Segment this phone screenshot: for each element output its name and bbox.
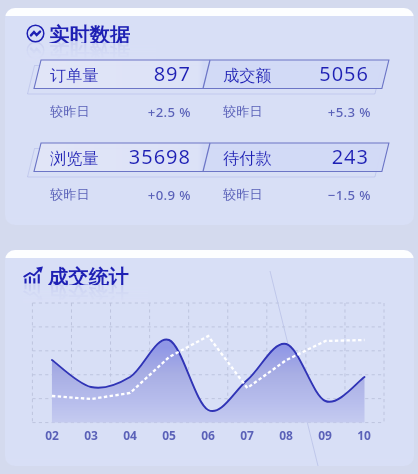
staticText: +2.5 % (71, 103, 191, 121)
other: Realtime data (26, 24, 45, 43)
staticText: 03 (77, 427, 105, 443)
staticText: +0.9 % (71, 186, 191, 204)
button[interactable]: Transaction statistics (23, 265, 148, 285)
staticText: 35698 (51, 143, 191, 170)
staticText: 较昨日 (50, 186, 90, 203)
staticText: 较昨日 (50, 103, 90, 120)
staticText: 实时数据 (49, 23, 130, 43)
staticText: 06 (194, 427, 222, 443)
staticText: 02 (38, 427, 66, 443)
staticText: 浏览量 (50, 148, 99, 168)
staticText: 成交统计 (48, 265, 129, 285)
staticText: 897 (51, 60, 191, 87)
staticText: 较昨日 (223, 103, 263, 120)
staticText: 5056 (229, 60, 369, 87)
staticText: 07 (233, 427, 261, 443)
staticText: 订单量 (50, 65, 99, 85)
staticText: +5.3 % (251, 103, 371, 121)
other: Realtime data (26, 41, 45, 60)
staticText: 待付款 (223, 148, 272, 168)
staticText: 实时数据 (49, 41, 130, 61)
other: Transaction statistics (23, 283, 44, 303)
staticText: 243 (229, 143, 369, 170)
other: Transaction statistics (23, 265, 44, 285)
staticText: 09 (311, 427, 339, 443)
staticText: −1.5 % (251, 186, 371, 204)
staticText: 较昨日 (223, 186, 263, 203)
staticText: 08 (272, 427, 300, 443)
staticText: 04 (116, 427, 144, 443)
staticText: 10 (350, 427, 378, 443)
staticText: 成交额 (223, 65, 272, 85)
button[interactable]: Realtime data (26, 23, 156, 43)
staticText: 成交统计 (48, 283, 129, 303)
staticText: 05 (155, 427, 183, 443)
